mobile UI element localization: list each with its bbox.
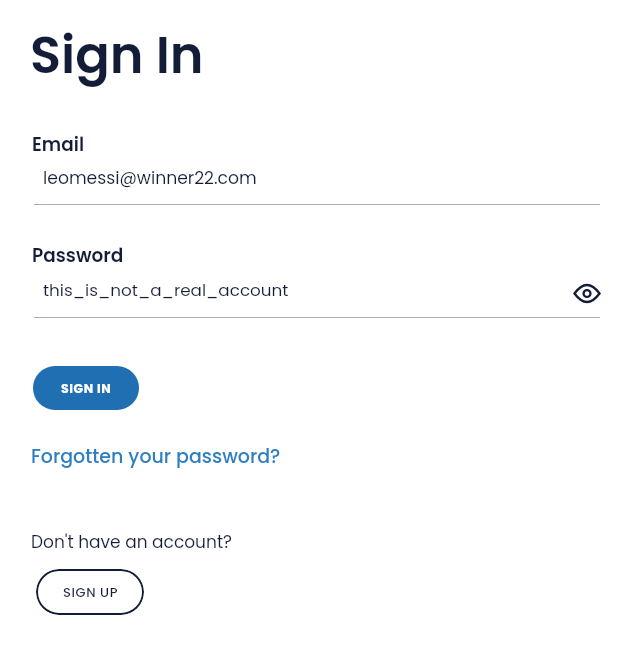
- button[interactable]: [570, 277, 604, 310]
- staticText: leomessi@winner22.com: [43, 166, 257, 190]
- button[interactable]: leomessi@winner22.com: [34, 163, 600, 205]
- staticText: SIGN UP: [63, 583, 118, 601]
- staticText: SIGN IN: [61, 380, 112, 397]
- staticText: Sign In: [30, 19, 204, 90]
- button[interactable]: this_is_not_a_real_account: [34, 276, 600, 317]
- button[interactable]: Forgotten your password?: [31, 443, 281, 470]
- button[interactable]: SIGN IN: [33, 366, 139, 410]
- staticText: Forgotten your password?: [31, 443, 281, 470]
- staticText: Email: [32, 132, 85, 158]
- staticText: Don't have an account?: [31, 530, 232, 554]
- staticText: this_is_not_a_real_account: [43, 278, 289, 302]
- button[interactable]: SIGN UP: [36, 569, 144, 615]
- staticText: Password: [32, 243, 124, 269]
